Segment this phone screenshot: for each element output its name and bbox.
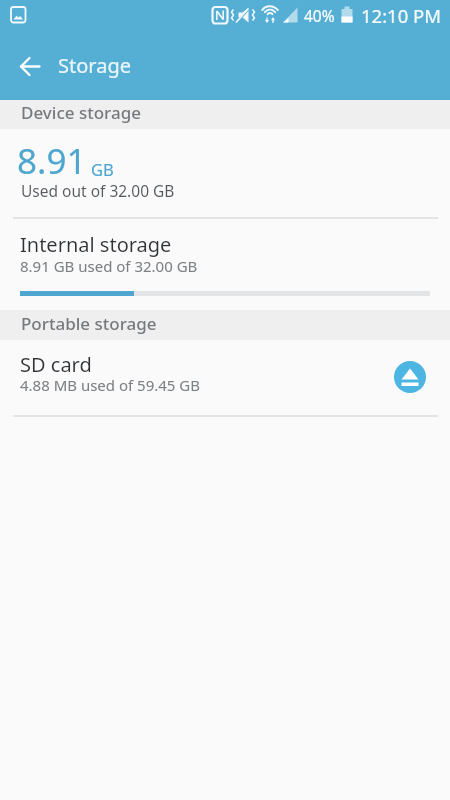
staticText: GB: [91, 158, 114, 180]
staticText: Portable storage: [21, 312, 157, 335]
staticText: 12:10 PM: [361, 3, 442, 28]
button[interactable]: [8, 45, 52, 89]
staticText: 4.88 MB used of 59.45 GB: [20, 375, 201, 395]
button[interactable]: [0, 129, 450, 218]
staticText: 8.91 GB used of 32.00 GB: [20, 256, 198, 276]
button[interactable]: [0, 340, 450, 415]
staticText: Device storage: [21, 101, 141, 124]
staticText: 8.91: [17, 137, 87, 185]
staticText: 40%: [304, 5, 335, 26]
staticText: SD card: [20, 351, 92, 378]
button[interactable]: [0, 218, 450, 310]
staticText: Internal storage: [20, 231, 172, 258]
staticText: Storage: [58, 52, 131, 79]
staticText: Used out of 32.00 GB: [21, 180, 175, 201]
button[interactable]: [394, 361, 426, 393]
